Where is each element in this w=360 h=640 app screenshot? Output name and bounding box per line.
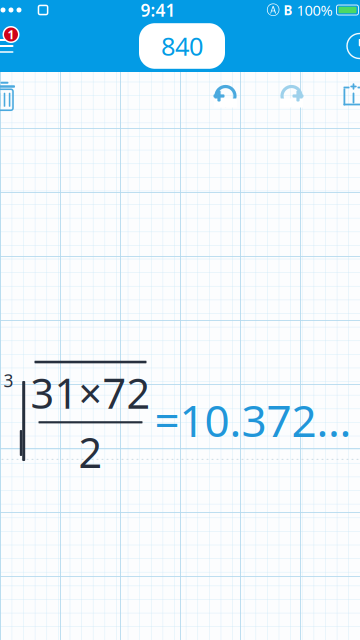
staticText: 3	[3, 369, 13, 392]
staticText: 840	[161, 29, 203, 63]
staticText: =10.372…	[154, 391, 351, 449]
button[interactable]: Redo	[269, 74, 313, 118]
button[interactable]: 840	[139, 23, 225, 69]
staticText: Ⓐ	[266, 2, 279, 18]
button[interactable]: History	[337, 24, 360, 68]
staticText: 1	[7, 26, 14, 42]
button[interactable]: Menu, 1 notification	[0, 24, 26, 68]
button[interactable]: Delete	[0, 74, 26, 118]
staticText: 9:41	[140, 0, 175, 21]
button[interactable]: Undo	[203, 74, 247, 118]
staticText: 31×72	[30, 365, 150, 420]
staticText: 2	[78, 424, 102, 479]
staticText: B	[283, 1, 292, 19]
button[interactable]: Share	[331, 74, 360, 118]
staticText: 100%	[296, 0, 332, 20]
